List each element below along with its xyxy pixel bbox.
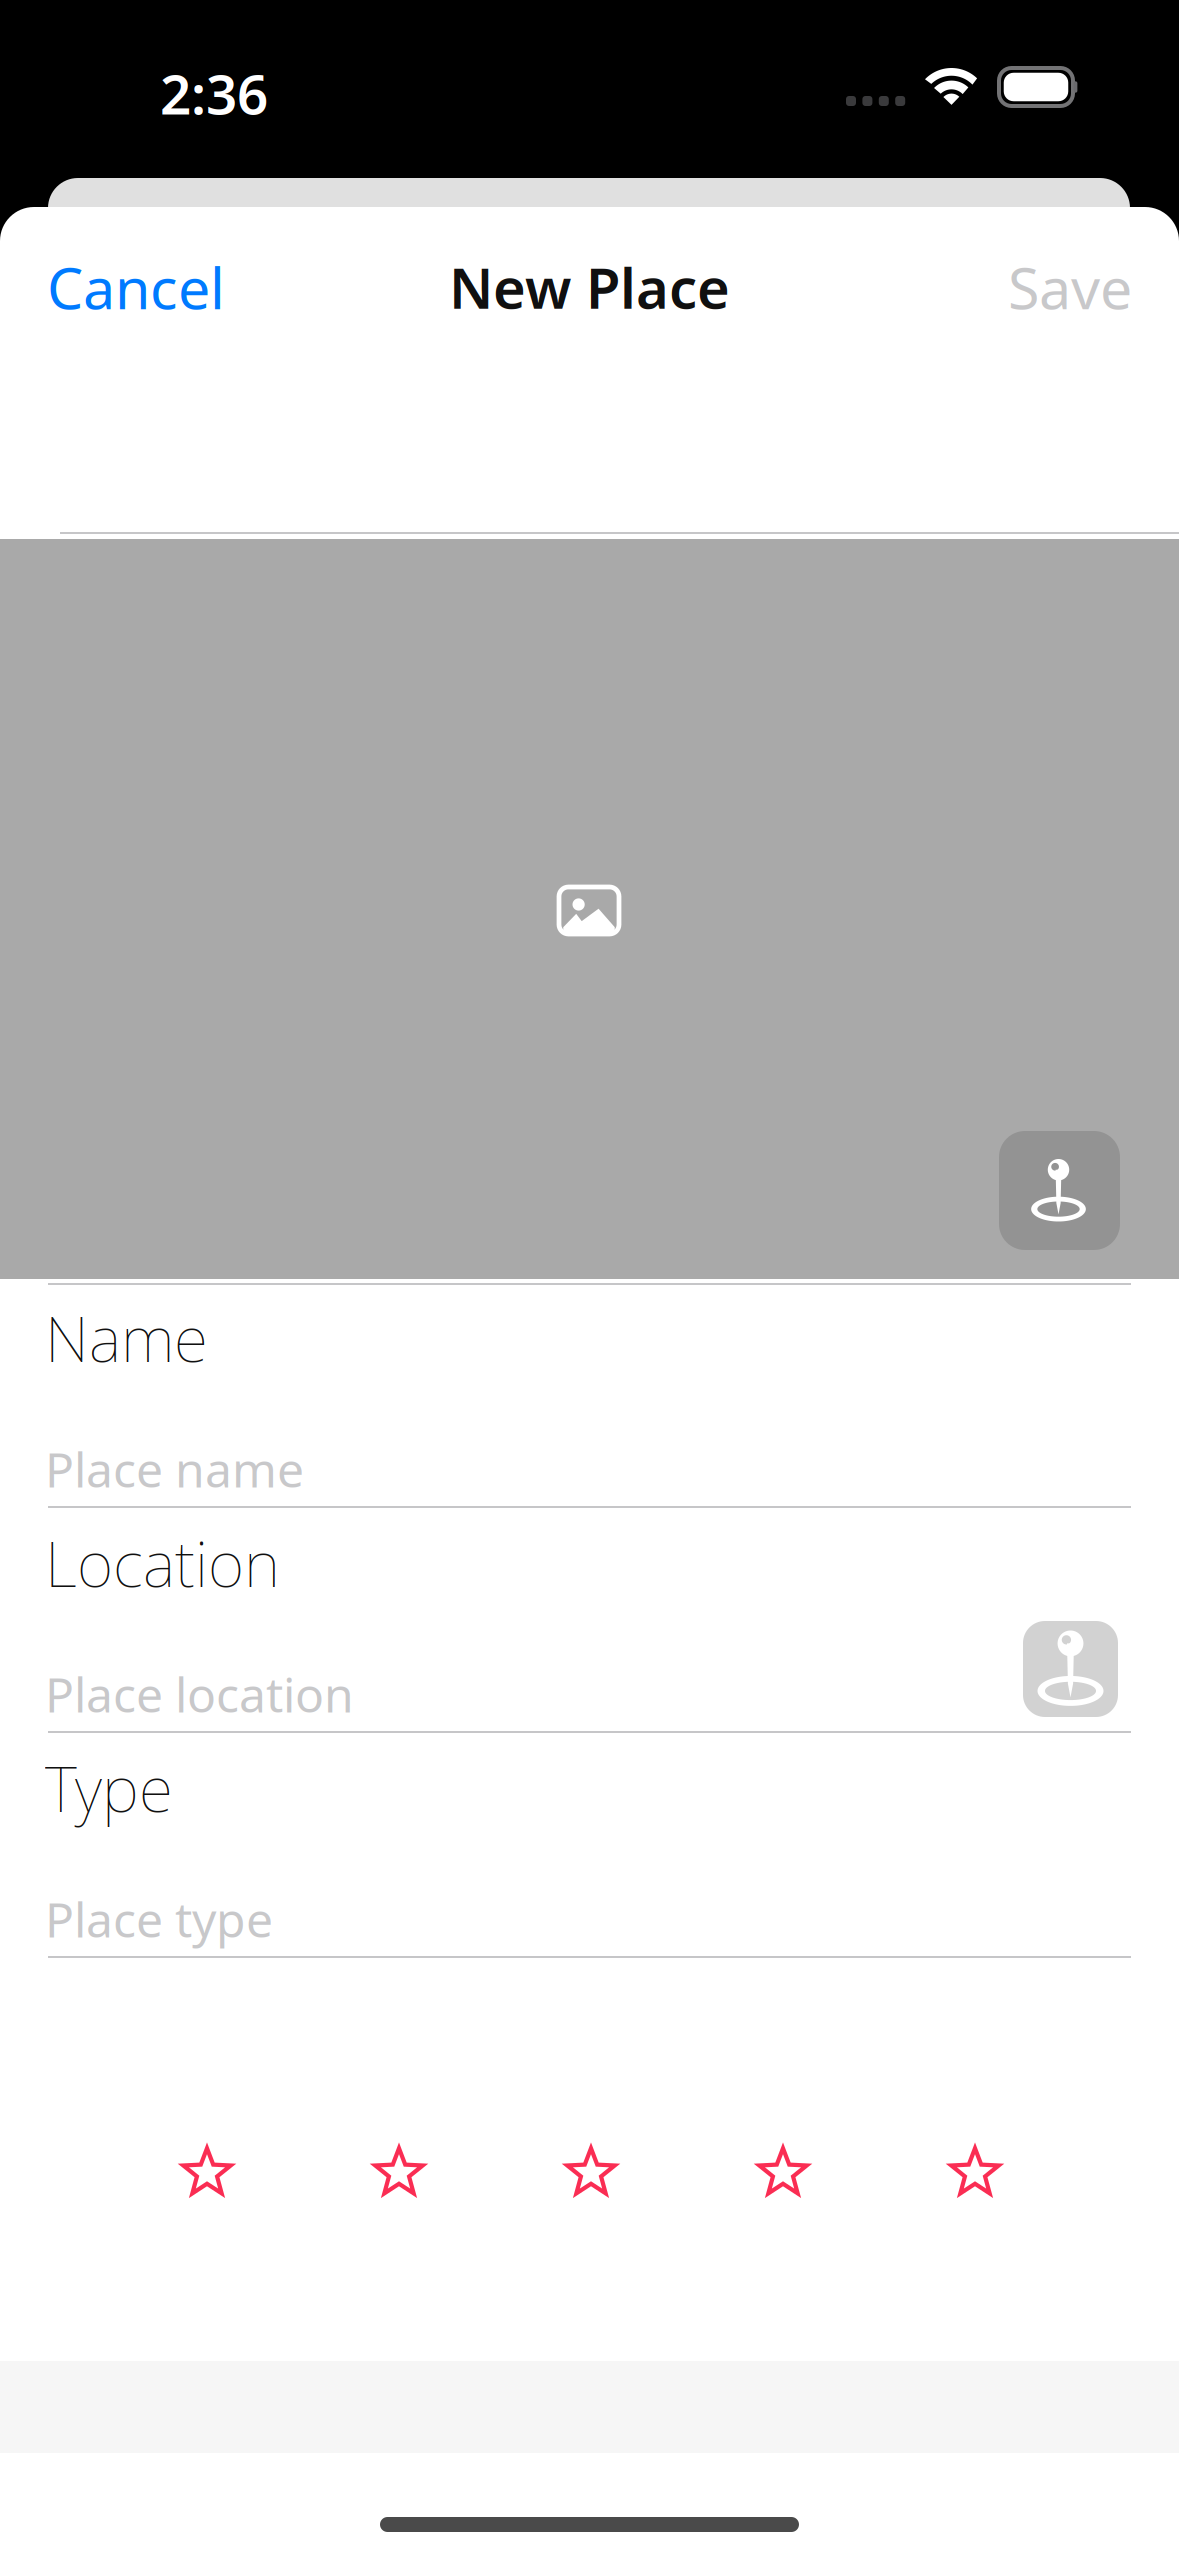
staticText: Place location bbox=[45, 1662, 354, 1726]
staticText: Place type bbox=[45, 1887, 273, 1951]
staticText: Type bbox=[45, 1746, 173, 1829]
staticText: Place name bbox=[45, 1437, 304, 1501]
button[interactable]: Name bbox=[0, 1283, 1179, 1508]
button[interactable]: Rate 3 star bbox=[543, 2124, 639, 2220]
button[interactable]: Cancel bbox=[47, 243, 267, 331]
staticText: Name bbox=[45, 1296, 208, 1379]
button[interactable]: Rate 4 star bbox=[735, 2124, 831, 2220]
staticText: New Place bbox=[449, 250, 730, 324]
staticText: 2:36 bbox=[160, 57, 268, 130]
button[interactable]: Use current location bbox=[1023, 1621, 1118, 1717]
staticText: Cancel bbox=[47, 249, 225, 325]
button[interactable]: Type bbox=[0, 1733, 1179, 1958]
button[interactable]: Location bbox=[0, 1508, 1179, 1733]
button[interactable]: Rate 1 star bbox=[159, 2124, 255, 2220]
button[interactable]: Choose a photo bbox=[0, 539, 1179, 1279]
button[interactable]: Save bbox=[932, 243, 1132, 331]
staticText: Save bbox=[1008, 249, 1132, 325]
button[interactable]: Rate 2 star bbox=[351, 2124, 447, 2220]
button[interactable]: Rate 5 star bbox=[927, 2124, 1023, 2220]
staticText: Location bbox=[45, 1521, 280, 1604]
button[interactable]: Drop a pin on the map bbox=[999, 1131, 1120, 1250]
